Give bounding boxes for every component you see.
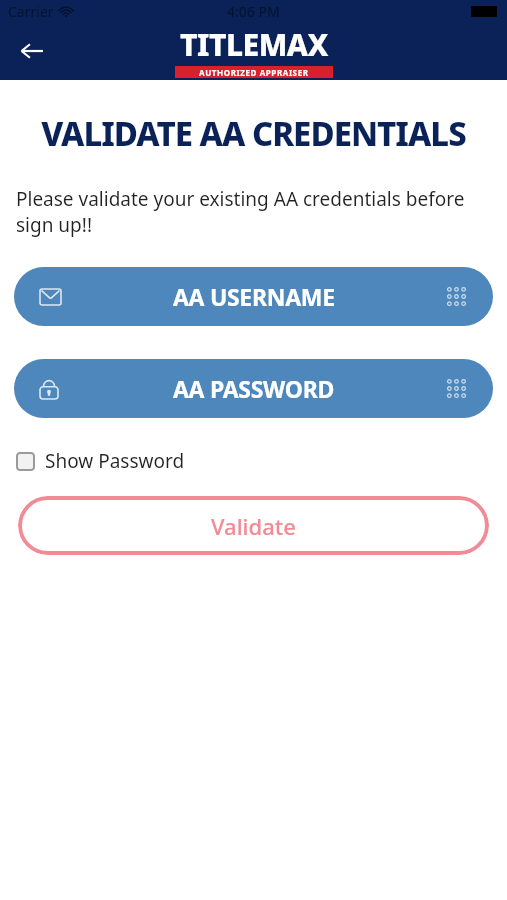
staticText: Please validate your existing AA credent… [16,186,491,237]
button[interactable]: AA USERNAME [14,267,493,326]
staticText: 4:06 PM [227,2,280,21]
staticText: AUTHORIZED APPRAISER [199,67,309,78]
staticText: Validate [211,511,296,541]
button[interactable]: Validate [18,496,489,555]
staticText: AA PASSWORD [173,373,335,404]
button[interactable]: Back [8,27,56,75]
staticText: Carrier [8,2,54,21]
staticText: VALIDATE AA CREDENTIALS [0,111,507,156]
staticText: TITLEMAX [180,24,328,65]
staticText: Show Password [45,448,185,474]
button[interactable]: Show Password [14,444,187,478]
button[interactable]: AA PASSWORD [14,359,493,418]
staticText: AA USERNAME [173,281,335,312]
